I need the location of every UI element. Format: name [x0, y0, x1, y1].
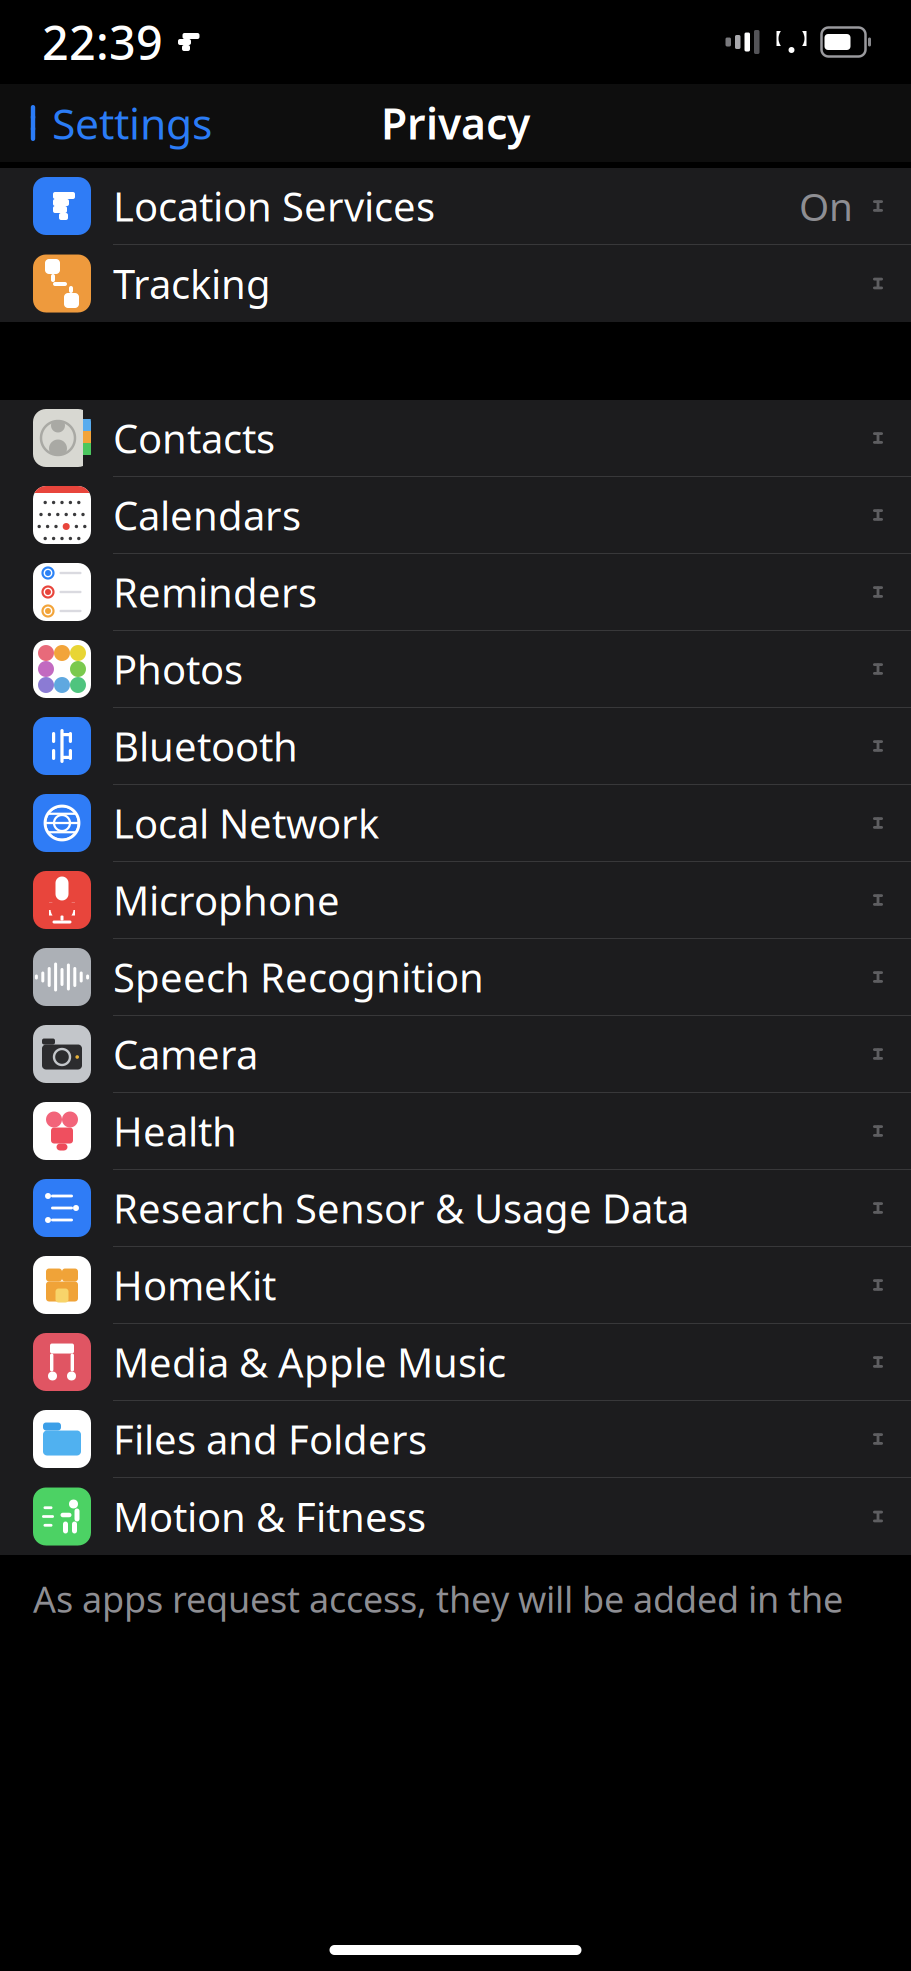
staticText: Contacts	[113, 411, 275, 464]
staticText: Health	[113, 1104, 237, 1157]
button[interactable]: Microphone	[0, 862, 911, 939]
staticText: 22:39	[42, 11, 163, 73]
staticText: Motion & Fitness	[113, 1490, 426, 1543]
button[interactable]: Calendars	[0, 477, 911, 554]
staticText: Location Services	[113, 179, 435, 232]
staticText: Tracking	[113, 257, 271, 310]
staticText: Media & Apple Music	[113, 1335, 506, 1388]
staticText: Calendars	[113, 488, 301, 541]
staticText: On	[799, 180, 853, 232]
button[interactable]: Location Services	[0, 168, 911, 245]
staticText: Reminders	[113, 565, 317, 618]
staticText: Bluetooth	[113, 719, 298, 772]
staticText: Privacy	[381, 95, 530, 151]
button[interactable]: Reminders	[0, 554, 911, 631]
staticText: Local Network	[113, 796, 379, 849]
staticText: Camera	[113, 1027, 258, 1080]
staticText: HomeKit	[113, 1258, 276, 1311]
button[interactable]: Motion & Fitness	[0, 1478, 911, 1555]
button[interactable]: Media & Apple Music	[0, 1324, 911, 1401]
button[interactable]: Local Network	[0, 785, 911, 862]
button[interactable]: Health	[0, 1093, 911, 1170]
button[interactable]: HomeKit	[0, 1247, 911, 1324]
staticText: Settings	[52, 95, 212, 151]
staticText: Research Sensor & Usage Data	[113, 1181, 689, 1234]
button[interactable]: Contacts	[0, 400, 911, 477]
button[interactable]: Files and Folders	[0, 1401, 911, 1478]
button[interactable]: Research Sensor & Usage Data	[0, 1170, 911, 1247]
staticText: Photos	[113, 642, 243, 695]
staticText: Speech Recognition	[113, 950, 484, 1003]
button[interactable]: Tracking	[0, 245, 911, 322]
button[interactable]: Speech Recognition	[0, 939, 911, 1016]
staticText: Microphone	[113, 873, 340, 926]
button[interactable]: Camera	[0, 1016, 911, 1093]
button[interactable]: Bluetooth	[0, 708, 911, 785]
staticText: Files and Folders	[113, 1412, 427, 1465]
button[interactable]: Photos	[0, 631, 911, 708]
staticText: As apps request access, they will be add…	[33, 1575, 843, 1623]
button[interactable]: Settings	[0, 84, 228, 162]
